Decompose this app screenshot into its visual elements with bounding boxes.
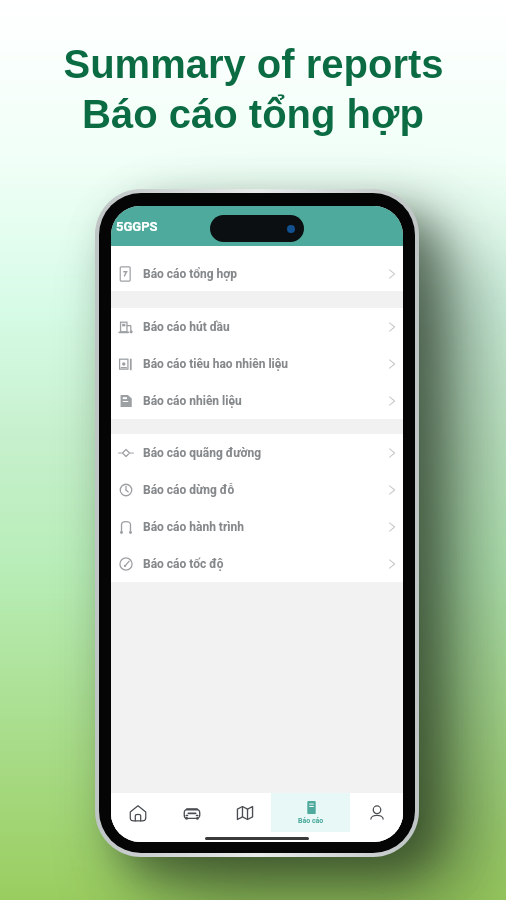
staticText: 5GGPS: [116, 219, 158, 234]
button[interactable]: Báo cáo tiêu hao nhiên liệu: [111, 345, 403, 382]
button[interactable]: Báo cáo quãng đường: [111, 434, 403, 471]
button[interactable]: Reports: [271, 793, 350, 832]
staticText: Báo cáo hút dầu: [143, 320, 230, 334]
button[interactable]: Báo cáo tốc độ: [111, 545, 403, 582]
staticText: Báo cáo tốc độ: [143, 557, 224, 571]
button[interactable]: Báo cáo hút dầu: [111, 308, 403, 345]
staticText: Báo cáo tổng hợp: [143, 267, 237, 281]
button[interactable]: Báo cáo tổng hợp: [111, 256, 403, 291]
button[interactable]: Account: [350, 793, 403, 832]
staticText: Báo cáo quãng đường: [143, 446, 262, 460]
staticText: Summary of reports: [63, 42, 444, 87]
staticText: Báo cáo: [298, 817, 324, 825]
button[interactable]: Báo cáo hành trình: [111, 508, 403, 545]
button[interactable]: Báo cáo dừng đỗ: [111, 471, 403, 508]
staticText: Báo cáo tổng hợp: [82, 92, 424, 137]
staticText: Báo cáo nhiên liệu: [143, 394, 242, 408]
staticText: Báo cáo hành trình: [143, 520, 245, 534]
button[interactable]: Map: [218, 793, 271, 832]
button[interactable]: Báo cáo nhiên liệu: [111, 382, 403, 419]
button[interactable]: Vehicles: [165, 793, 218, 832]
button[interactable]: Home: [111, 793, 165, 832]
staticText: Báo cáo tiêu hao nhiên liệu: [143, 357, 288, 371]
staticText: Báo cáo dừng đỗ: [143, 483, 235, 497]
